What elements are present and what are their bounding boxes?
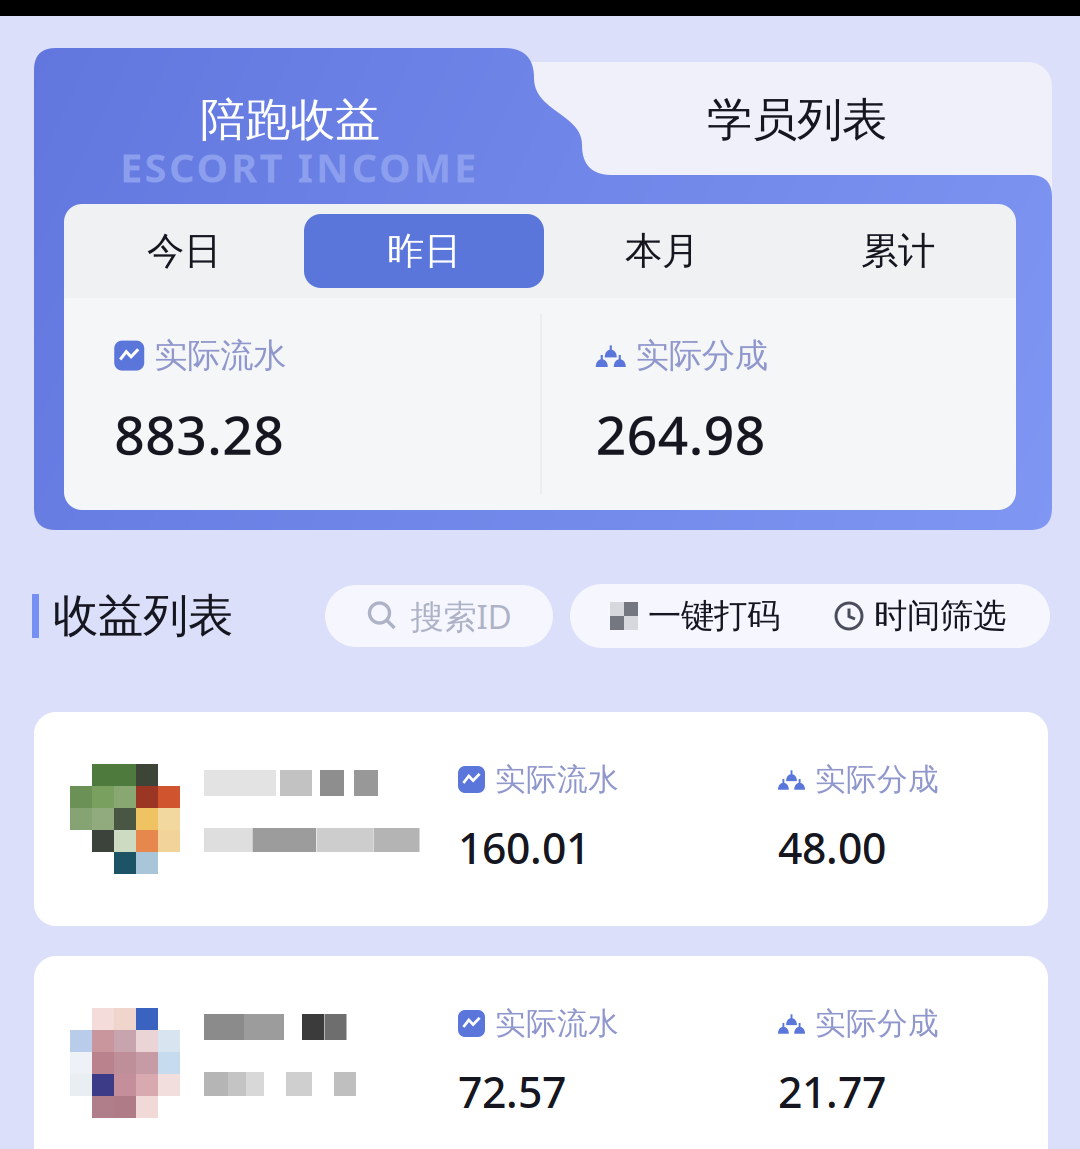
staticText: 学员列表	[707, 92, 887, 148]
staticText: 实际分成	[636, 335, 768, 376]
button[interactable]: 一键打码	[585, 584, 805, 648]
staticText: 160.01	[458, 819, 590, 876]
staticText: 时间筛选	[874, 595, 1006, 636]
staticText: ESCORT INCOME	[120, 140, 476, 193]
staticText: 实际分成	[815, 761, 939, 798]
staticText: 搜索ID	[410, 594, 511, 638]
staticText: 48.00	[778, 819, 886, 876]
staticText: 收益列表	[53, 588, 233, 644]
staticText: 今日	[147, 228, 221, 274]
staticText: 实际分成	[815, 1005, 939, 1042]
staticText: 昨日	[387, 228, 461, 274]
staticText: 本月	[625, 228, 699, 274]
staticText: 264.98	[596, 399, 766, 469]
button[interactable]: 实际流水	[34, 956, 1048, 1149]
staticText: 一键打码	[648, 595, 780, 636]
button[interactable]: 时间筛选	[805, 584, 1035, 648]
staticText: 883.28	[114, 399, 284, 469]
staticText: 72.57	[458, 1063, 566, 1120]
button[interactable]: 搜索ID	[325, 585, 553, 647]
staticText: 累计	[861, 228, 935, 274]
staticText: 实际流水	[495, 1005, 619, 1042]
staticText: 21.77	[778, 1063, 886, 1120]
staticText: 实际流水	[495, 761, 619, 798]
staticText: 陪跑收益	[200, 92, 380, 148]
button[interactable]: 实际流水	[34, 712, 1048, 926]
staticText: 实际流水	[154, 335, 286, 376]
